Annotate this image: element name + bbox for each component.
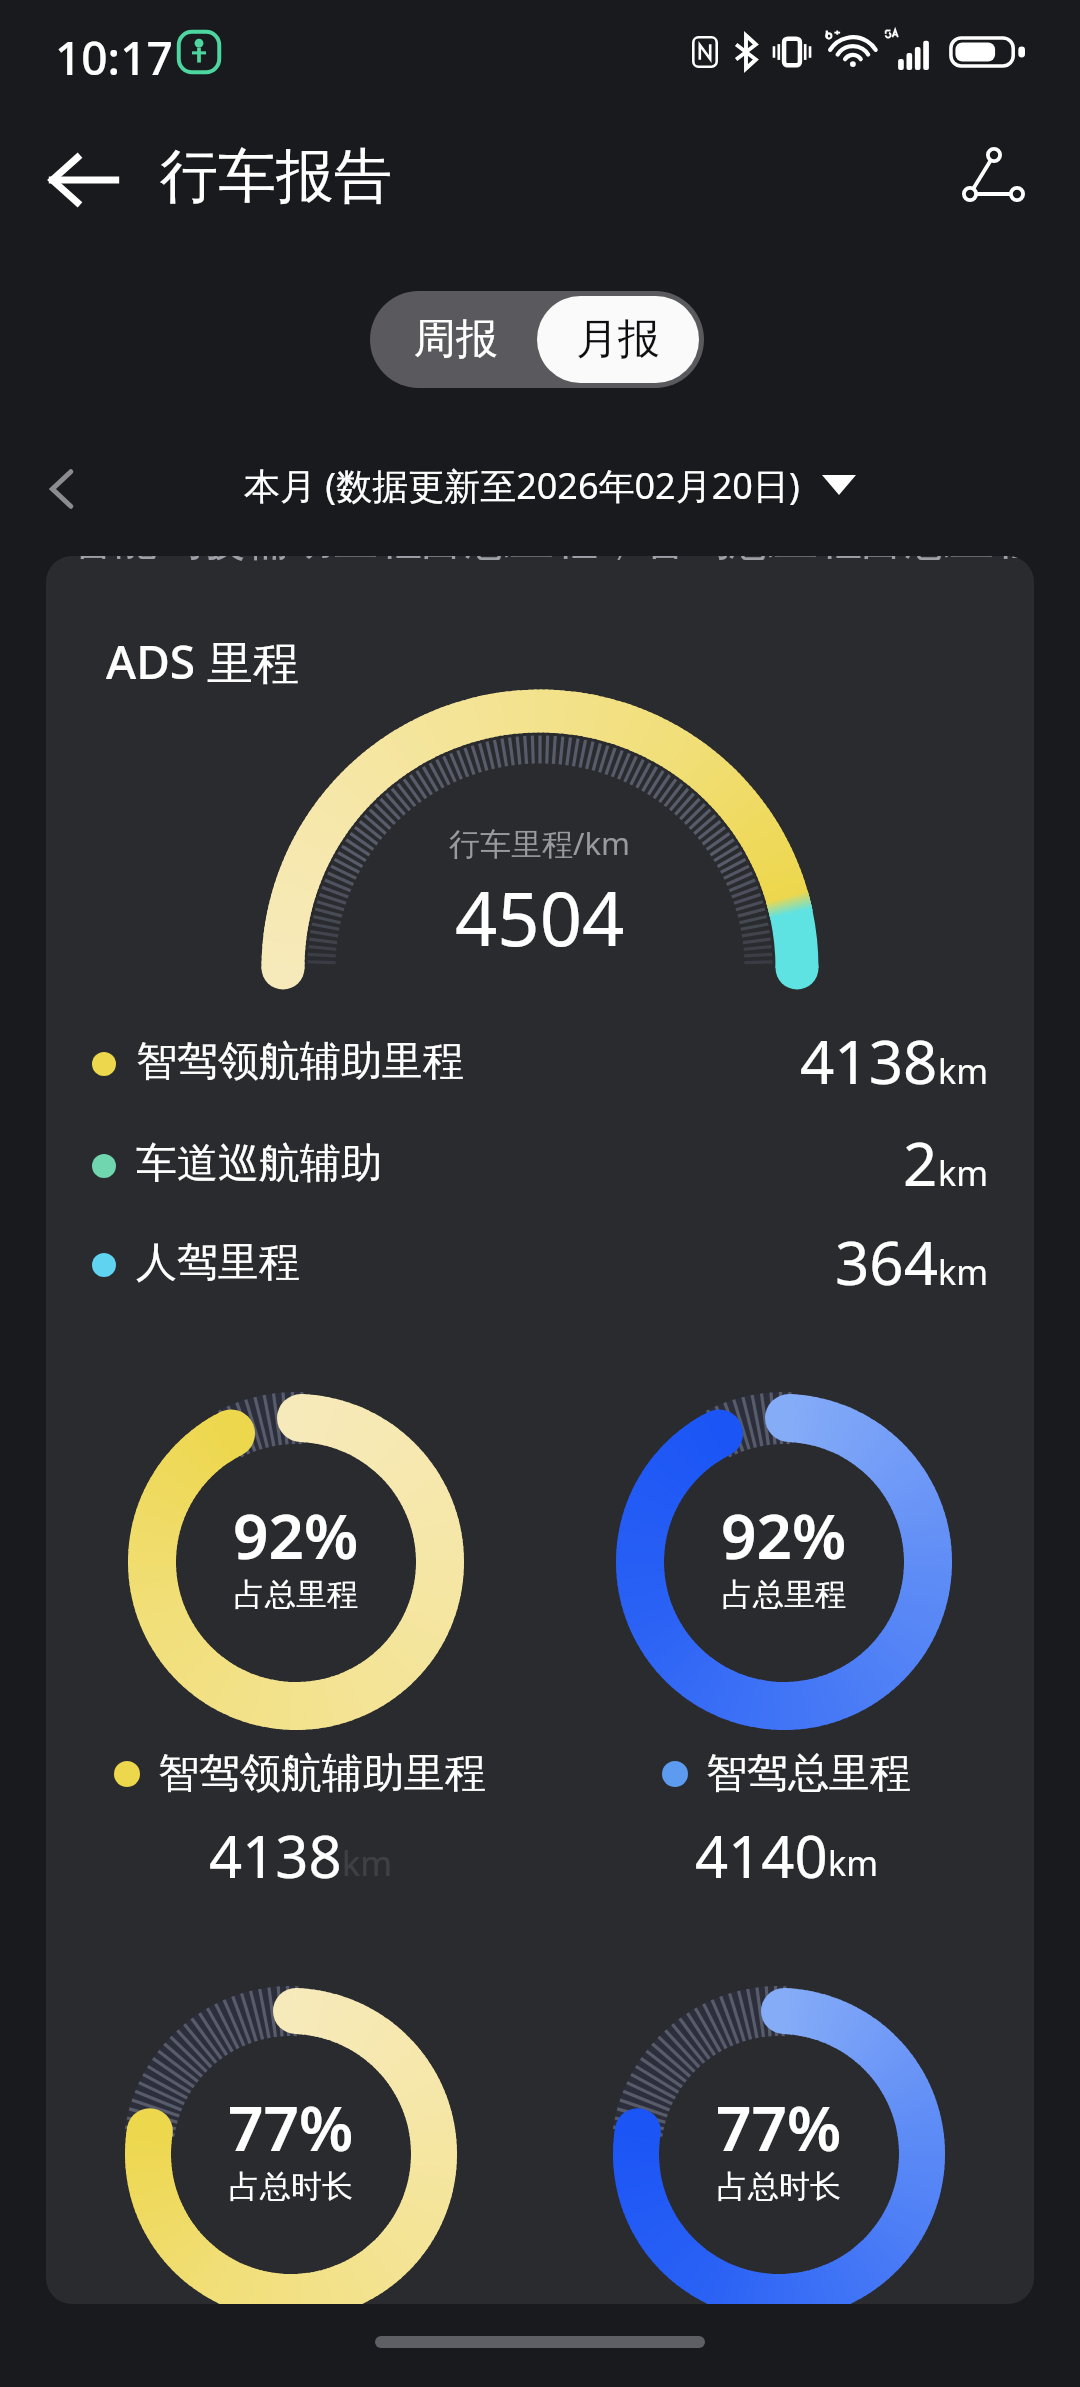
staticText: ADS 里程	[106, 630, 300, 693]
staticText: 月报	[576, 313, 660, 366]
button[interactable]: 周报	[375, 296, 537, 383]
staticText: 364	[835, 1221, 938, 1301]
staticText: km	[938, 1048, 988, 1094]
staticText: km	[938, 1150, 988, 1196]
staticText: 2	[903, 1122, 938, 1202]
staticText: 10:17	[55, 26, 173, 89]
staticText: 智驾领航辅助里程	[136, 1036, 464, 1088]
staticText: 本月 (数据更新至2026年02月20日)	[244, 461, 800, 510]
staticText: 智驾领航辅助里程	[158, 1748, 486, 1800]
staticText: km	[342, 1840, 392, 1886]
staticText: 占总时长	[717, 2167, 841, 2206]
button[interactable]: 月报	[537, 296, 699, 383]
staticText: 4140	[695, 1816, 828, 1895]
staticText: 行车里程/km	[449, 822, 631, 864]
staticText: 92%	[233, 1493, 359, 1577]
staticText: 车道巡航辅助	[136, 1138, 382, 1190]
button[interactable]: Back	[34, 130, 134, 230]
staticText: 智能驾驶辅助里程占总里程，智驾总里程占总里程	[70, 556, 1034, 567]
staticText: 77%	[228, 2085, 354, 2169]
staticText: 92%	[721, 1493, 847, 1577]
staticText: 占总里程	[722, 1575, 846, 1614]
staticText: 行车报告	[160, 140, 392, 213]
staticText: 人驾里程	[136, 1237, 300, 1289]
staticText: 周报	[414, 313, 498, 366]
staticText: km	[938, 1249, 988, 1295]
staticText: 77%	[716, 2085, 842, 2169]
staticText: 4504	[455, 867, 625, 968]
button[interactable]: 本月 (数据更新至2026年02月20日)	[244, 454, 856, 516]
staticText: km	[828, 1840, 878, 1886]
staticText: 智驾总里程	[706, 1748, 911, 1800]
button[interactable]: Share	[946, 126, 1046, 226]
staticText: 占总里程	[234, 1575, 358, 1614]
staticText: 占总时长	[229, 2167, 353, 2206]
staticText: 4138	[209, 1816, 342, 1895]
staticText: 4138	[800, 1020, 938, 1100]
